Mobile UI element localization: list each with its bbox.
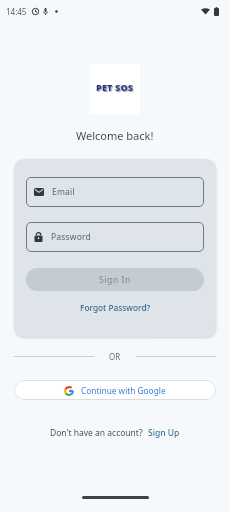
button[interactable]: Password [26, 222, 204, 252]
button[interactable]: Sign Up [148, 427, 180, 439]
staticText: 14:45 [6, 6, 27, 17]
button[interactable]: Forgot Password? [80, 302, 151, 313]
staticText: OR [109, 351, 121, 362]
staticText: Password [51, 231, 92, 243]
button[interactable]: Email [26, 177, 204, 207]
button[interactable]: Sign In [26, 268, 204, 291]
staticText: Sign In [99, 274, 131, 286]
staticText: Welcome back! [76, 128, 154, 143]
staticText: Continue with Google [81, 385, 166, 396]
staticText: Don't have an account? [50, 427, 143, 439]
staticText: PET SOS [96, 81, 134, 93]
staticText: Email [52, 186, 75, 198]
button[interactable]: Continue with Google [14, 380, 216, 400]
